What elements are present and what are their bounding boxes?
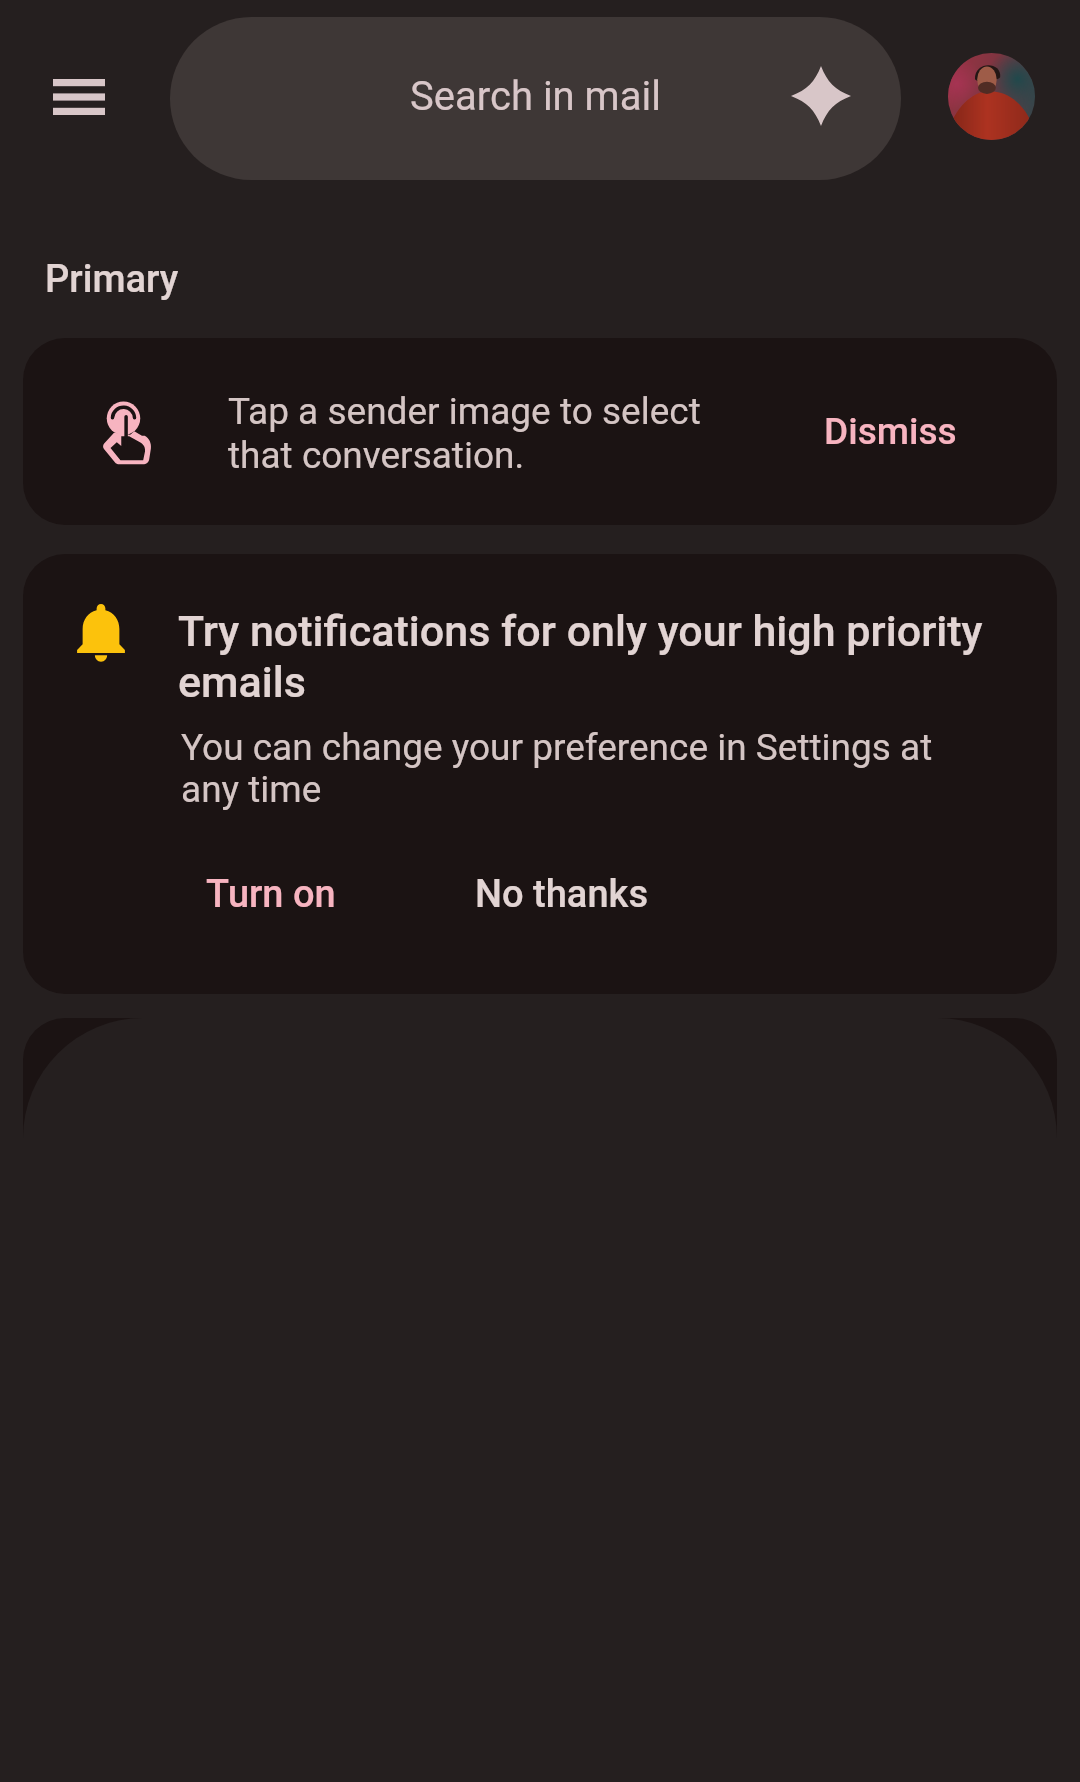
staticText: Search in mail bbox=[170, 73, 901, 120]
staticText: Dismiss bbox=[824, 410, 957, 453]
button[interactable]: Tap a sender image to select bbox=[23, 338, 1057, 525]
staticText: You can change your preference in Settin… bbox=[181, 726, 933, 769]
button[interactable]: Turn on bbox=[171, 844, 371, 944]
staticText: emails bbox=[178, 657, 307, 707]
staticText: Primary bbox=[45, 257, 179, 302]
button[interactable]: Search in mail bbox=[170, 17, 901, 180]
button[interactable]: No thanks bbox=[452, 844, 672, 944]
staticText: Try notifications for only your high pri… bbox=[178, 606, 983, 656]
staticText: Turn on bbox=[206, 872, 336, 917]
staticText: that conversation. bbox=[228, 434, 525, 477]
button[interactable]: Dismiss bbox=[775, 376, 1005, 486]
staticText: Tap a sender image to select bbox=[228, 390, 701, 433]
button[interactable]: Try notifications for only your high pri… bbox=[23, 554, 1057, 994]
button[interactable]: Account bbox=[948, 53, 1035, 140]
staticText: No thanks bbox=[475, 872, 649, 917]
button[interactable]: Gemini assistant bbox=[770, 45, 872, 147]
staticText: any time bbox=[181, 768, 322, 811]
button[interactable]: Open navigation menu bbox=[28, 46, 130, 148]
